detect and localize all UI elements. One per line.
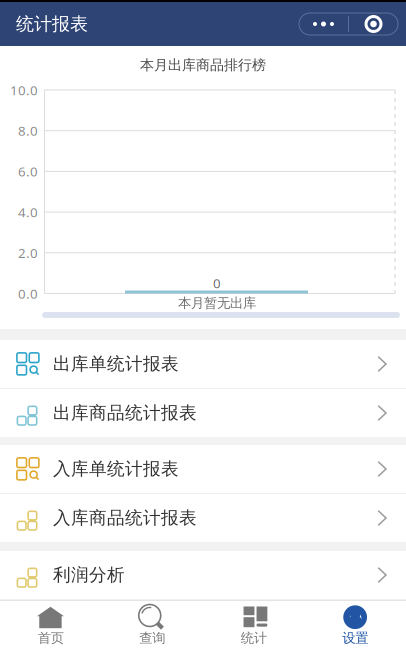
button[interactable]: 入库单统计报表 (0, 445, 406, 493)
staticText: 6.0 (18, 162, 38, 180)
staticText: 首页 (38, 630, 64, 646)
staticText: 统计报表 (16, 13, 88, 35)
button[interactable]: 首页 (0, 601, 101, 655)
staticText: 本月暂无出库 (178, 295, 256, 311)
button[interactable]: 设置 (304, 601, 406, 655)
button[interactable]: More (299, 13, 348, 35)
staticText: 本月出库商品排行榜 (140, 56, 266, 74)
staticText: 0.0 (18, 284, 38, 303)
staticText: 查询 (139, 630, 165, 646)
staticText: 出库单统计报表 (53, 353, 179, 375)
staticText: 统计 (241, 630, 267, 646)
staticText: 2.0 (18, 244, 38, 262)
button[interactable]: 出库商品统计报表 (0, 389, 406, 437)
button[interactable]: 出库单统计报表 (0, 340, 406, 388)
staticText: 0 (213, 274, 221, 292)
staticText: 设置 (342, 630, 368, 646)
button[interactable]: 利润分析 (0, 551, 406, 599)
staticText: 4.0 (18, 203, 38, 221)
button[interactable]: Close (349, 13, 398, 35)
staticText: 8.0 (18, 122, 38, 140)
staticText: 10.0 (10, 81, 38, 99)
button[interactable]: 入库商品统计报表 (0, 494, 406, 542)
staticText: 入库商品统计报表 (53, 507, 197, 529)
staticText: 出库商品统计报表 (53, 402, 197, 424)
button[interactable]: 查询 (101, 601, 203, 655)
staticText: 利润分析 (53, 564, 125, 586)
button[interactable]: 统计 (203, 601, 304, 655)
staticText: 入库单统计报表 (53, 458, 179, 480)
